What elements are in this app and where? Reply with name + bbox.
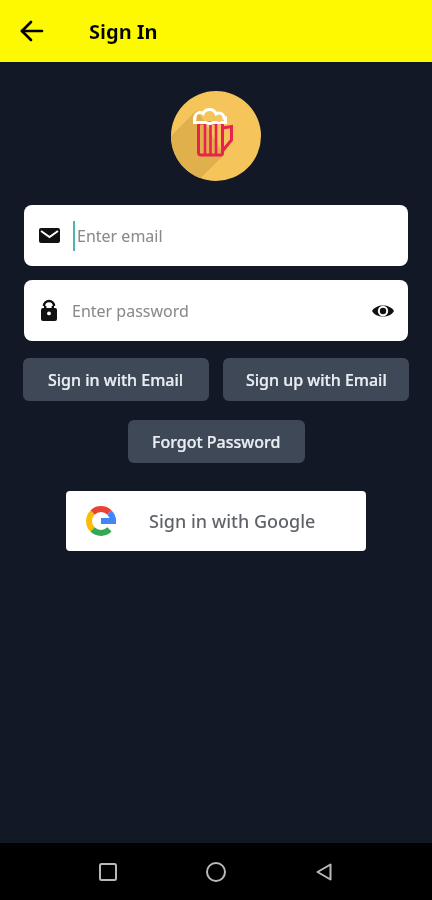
staticText: Sign In [89, 18, 158, 45]
button[interactable]: Sign in with Email [23, 358, 209, 401]
button[interactable]: Forgot Password [128, 420, 305, 463]
button[interactable]: Sign up with Email [223, 358, 409, 401]
staticText: Enter password [72, 300, 189, 322]
staticText: Sign in with Email [48, 369, 184, 391]
button[interactable] [12, 11, 52, 51]
staticText: Sign up with Email [246, 369, 387, 391]
button[interactable] [84, 848, 132, 896]
staticText: Forgot Password [152, 431, 281, 453]
button[interactable]: Sign in with Google [66, 491, 366, 551]
button[interactable] [300, 848, 348, 896]
staticText: Sign in with Google [149, 509, 316, 534]
staticText: Enter email [77, 225, 163, 247]
button[interactable]: Enter email [24, 205, 408, 266]
button[interactable]: Enter password [24, 280, 408, 341]
button[interactable] [192, 848, 240, 896]
